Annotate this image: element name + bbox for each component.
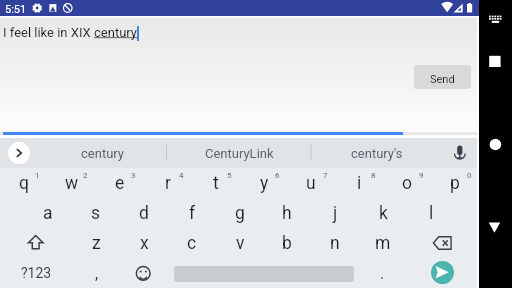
- staticText: CenturyLink: [205, 146, 274, 161]
- button[interactable]: Emoji: [122, 258, 162, 288]
- staticText: d: [139, 203, 149, 224]
- staticText: 6: [275, 171, 280, 180]
- staticText: Send: [430, 73, 455, 86]
- staticText: r: [165, 173, 171, 194]
- button[interactable]: s: [72, 198, 120, 228]
- button[interactable]: ,: [72, 258, 122, 288]
- staticText: 7: [323, 171, 328, 180]
- button[interactable]: d: [120, 198, 168, 228]
- button[interactable]: b: [263, 228, 311, 258]
- staticText: .: [380, 264, 385, 283]
- button[interactable]: t: [192, 168, 240, 198]
- button[interactable]: p: [431, 168, 479, 198]
- staticText: 5: [227, 171, 232, 180]
- staticText: m: [375, 233, 391, 254]
- staticText: 5:51: [5, 3, 27, 16]
- button[interactable]: Shift: [0, 228, 72, 258]
- button[interactable]: century: [38, 138, 166, 168]
- button[interactable]: i: [335, 168, 383, 198]
- button[interactable]: x: [120, 228, 168, 258]
- staticText: v: [236, 233, 245, 254]
- button[interactable]: .: [360, 258, 404, 288]
- button[interactable]: n: [311, 228, 359, 258]
- button[interactable]: v: [216, 228, 264, 258]
- staticText: century's: [351, 146, 403, 161]
- staticText: 2: [83, 171, 88, 180]
- staticText: u: [306, 173, 316, 194]
- button[interactable]: j: [311, 198, 359, 228]
- button[interactable]: CenturyLink: [167, 138, 311, 168]
- staticText: h: [282, 203, 292, 224]
- button[interactable]: e: [96, 168, 144, 198]
- button[interactable]: c: [168, 228, 216, 258]
- button[interactable]: u: [287, 168, 335, 198]
- staticText: q: [19, 173, 29, 194]
- staticText: s: [91, 203, 101, 224]
- button[interactable]: Send message: [431, 261, 454, 284]
- staticText: x: [140, 233, 149, 254]
- button[interactable]: m: [359, 228, 407, 258]
- staticText: o: [402, 173, 412, 194]
- button[interactable]: Hide keyboard: [485, 12, 506, 38]
- staticText: e: [115, 173, 125, 194]
- staticText: century: [81, 146, 124, 161]
- button[interactable]: k: [359, 198, 407, 228]
- staticText: 3: [131, 171, 136, 180]
- staticText: century: [94, 25, 137, 40]
- staticText: w: [65, 173, 79, 194]
- button[interactable]: ?123: [0, 258, 72, 288]
- button[interactable]: y: [240, 168, 288, 198]
- button[interactable]: f: [168, 198, 216, 228]
- staticText: n: [330, 233, 340, 254]
- staticText: k: [379, 203, 388, 224]
- button[interactable]: a: [24, 198, 72, 228]
- button[interactable]: g: [216, 198, 264, 228]
- staticText: y: [260, 173, 269, 194]
- staticText: g: [235, 203, 245, 224]
- staticText: 1: [35, 171, 40, 180]
- button[interactable]: century's: [312, 138, 441, 168]
- staticText: c: [187, 233, 197, 254]
- staticText: z: [92, 233, 101, 254]
- button[interactable]: w: [48, 168, 96, 198]
- button[interactable]: Back: [485, 208, 506, 234]
- staticText: a: [43, 203, 53, 224]
- button[interactable]: Voice input: [442, 138, 479, 168]
- staticText: ?123: [21, 265, 52, 281]
- button[interactable]: r: [144, 168, 192, 198]
- staticText: ,: [95, 264, 99, 283]
- button[interactable]: q: [0, 168, 48, 198]
- button[interactable]: Recents: [485, 50, 506, 76]
- staticText: t: [213, 173, 219, 194]
- button[interactable]: z: [72, 228, 120, 258]
- staticText: l: [429, 203, 434, 224]
- staticText: b: [282, 233, 292, 254]
- staticText: f: [189, 203, 196, 224]
- staticText: j: [333, 203, 338, 224]
- button[interactable]: Send: [414, 65, 471, 89]
- staticText: 9: [419, 171, 424, 180]
- button[interactable]: Home: [485, 132, 506, 158]
- staticText: 8: [371, 171, 376, 180]
- staticText: p: [450, 173, 460, 194]
- button[interactable]: o: [383, 168, 431, 198]
- button[interactable]: Backspace: [407, 228, 479, 258]
- staticText: 0: [467, 171, 472, 180]
- button[interactable]: More suggestions: [8, 142, 30, 164]
- staticText: i: [357, 173, 362, 194]
- staticText: 4: [179, 171, 184, 180]
- staticText: I feel like in XIX: [3, 25, 94, 40]
- button[interactable]: l: [407, 198, 455, 228]
- button[interactable]: h: [263, 198, 311, 228]
